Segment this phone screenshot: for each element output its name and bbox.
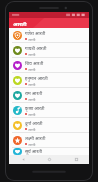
button[interactable]: शिव आरती — [9, 58, 89, 72]
button[interactable]: दुर्गा आरती — [9, 118, 89, 132]
staticText: आरती — [28, 97, 36, 101]
staticText: दुर्गा आरती — [25, 120, 43, 126]
staticText: आरती — [28, 52, 36, 56]
staticText: कृष्ण आरती — [25, 105, 45, 111]
button[interactable]: आरती — [13, 18, 27, 28]
button[interactable]: गणेश आरती — [9, 28, 89, 42]
staticText: आरती — [28, 67, 36, 71]
staticText: आरती — [28, 127, 36, 131]
staticText: गायत्री आरती — [25, 45, 47, 51]
button[interactable]: राम आरती — [9, 88, 89, 102]
staticText: शिव आरती — [25, 60, 44, 66]
button[interactable]: Home — [36, 155, 62, 164]
staticText: आरती — [28, 37, 36, 41]
staticText: राम आरती — [25, 90, 43, 96]
staticText: सूर्य आरती — [25, 148, 43, 154]
staticText: आरती — [13, 20, 27, 27]
button[interactable]: सूर्य आरती — [9, 148, 89, 155]
button[interactable]: गायत्री आरती — [9, 43, 89, 57]
button[interactable]: लक्ष्मी आरती — [9, 133, 89, 147]
button[interactable]: कृष्ण आरती — [9, 103, 89, 117]
staticText: लक्ष्मी आरती — [25, 135, 46, 141]
staticText: आरती — [28, 82, 36, 86]
button[interactable]: Recent apps — [63, 155, 89, 164]
staticText: आरती — [28, 142, 36, 146]
staticText: आरती — [28, 112, 36, 116]
staticText: गणेश आरती — [25, 30, 46, 36]
staticText: हनुमान आरती — [25, 75, 48, 81]
button[interactable]: Back — [10, 155, 36, 164]
button[interactable]: हनुमान आरती — [9, 73, 89, 87]
